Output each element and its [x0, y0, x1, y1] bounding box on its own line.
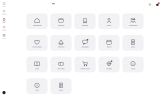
- button[interactable]: More: [0, 34, 9, 40]
- button[interactable]: Shop: [0, 18, 9, 24]
- button[interactable]: Premium: [50, 13, 72, 29]
- button[interactable]: Events: [98, 35, 120, 51]
- button[interactable]: Home: [0, 2, 9, 8]
- staticText: Explore: [0, 0, 61, 36]
- button[interactable]: Saved: [0, 26, 9, 32]
- staticText: Home: [0, 0, 50, 28]
- staticText: Messages: [11, 26, 159, 68]
- button[interactable]: Settings: [98, 57, 120, 72]
- staticText: Help: [2, 69, 72, 100]
- button[interactable]: Offline Store: [74, 57, 96, 72]
- staticText: Shop: [0, 1, 43, 44]
- button[interactable]: Inventory: [50, 35, 72, 51]
- staticText: Connections: [40, 4, 163, 47]
- button[interactable]: Account: [2, 91, 6, 94]
- staticText: More: [0, 17, 44, 60]
- button[interactable]: About: [122, 57, 144, 72]
- button[interactable]: Messages: [74, 35, 96, 51]
- staticText: Inventory: [0, 26, 133, 68]
- button[interactable]: Learn: [26, 57, 48, 72]
- button[interactable]: Gift Cards: [50, 57, 72, 72]
- staticText: Gift Cards: [0, 47, 135, 90]
- button[interactable]: Cart: [155, 2, 160, 7]
- staticText: Saved: [0, 9, 49, 52]
- button[interactable]: Explore: [0, 10, 9, 16]
- button[interactable]: Help: [26, 78, 48, 94]
- staticText: Premium: [0, 4, 130, 47]
- staticText: About: [87, 47, 163, 90]
- staticText: Legal: [20, 69, 101, 100]
- button[interactable]: Legal: [50, 78, 72, 94]
- button[interactable]: Rewards: [74, 13, 96, 29]
- button[interactable]: Connections: [122, 13, 144, 29]
- staticText: Rewards: [21, 4, 149, 47]
- staticText: Offline Store: [0, 47, 163, 90]
- staticText: Profile: [61, 4, 157, 47]
- button[interactable]: Marketplace: [26, 13, 48, 29]
- button[interactable]: Blog: [122, 35, 144, 51]
- staticText: Marketplace: [0, 4, 130, 47]
- staticText: Events: [59, 26, 158, 68]
- staticText: Blog: [99, 26, 163, 68]
- staticText: Settings: [47, 47, 163, 90]
- staticText: More: [12, 0, 95, 25]
- button[interactable]: Profile: [149, 3, 151, 6]
- button[interactable]: Communities: [26, 35, 48, 51]
- staticText: Learn: [0, 47, 80, 90]
- staticText: Communities: [0, 26, 137, 68]
- button[interactable]: Profile: [98, 13, 120, 29]
